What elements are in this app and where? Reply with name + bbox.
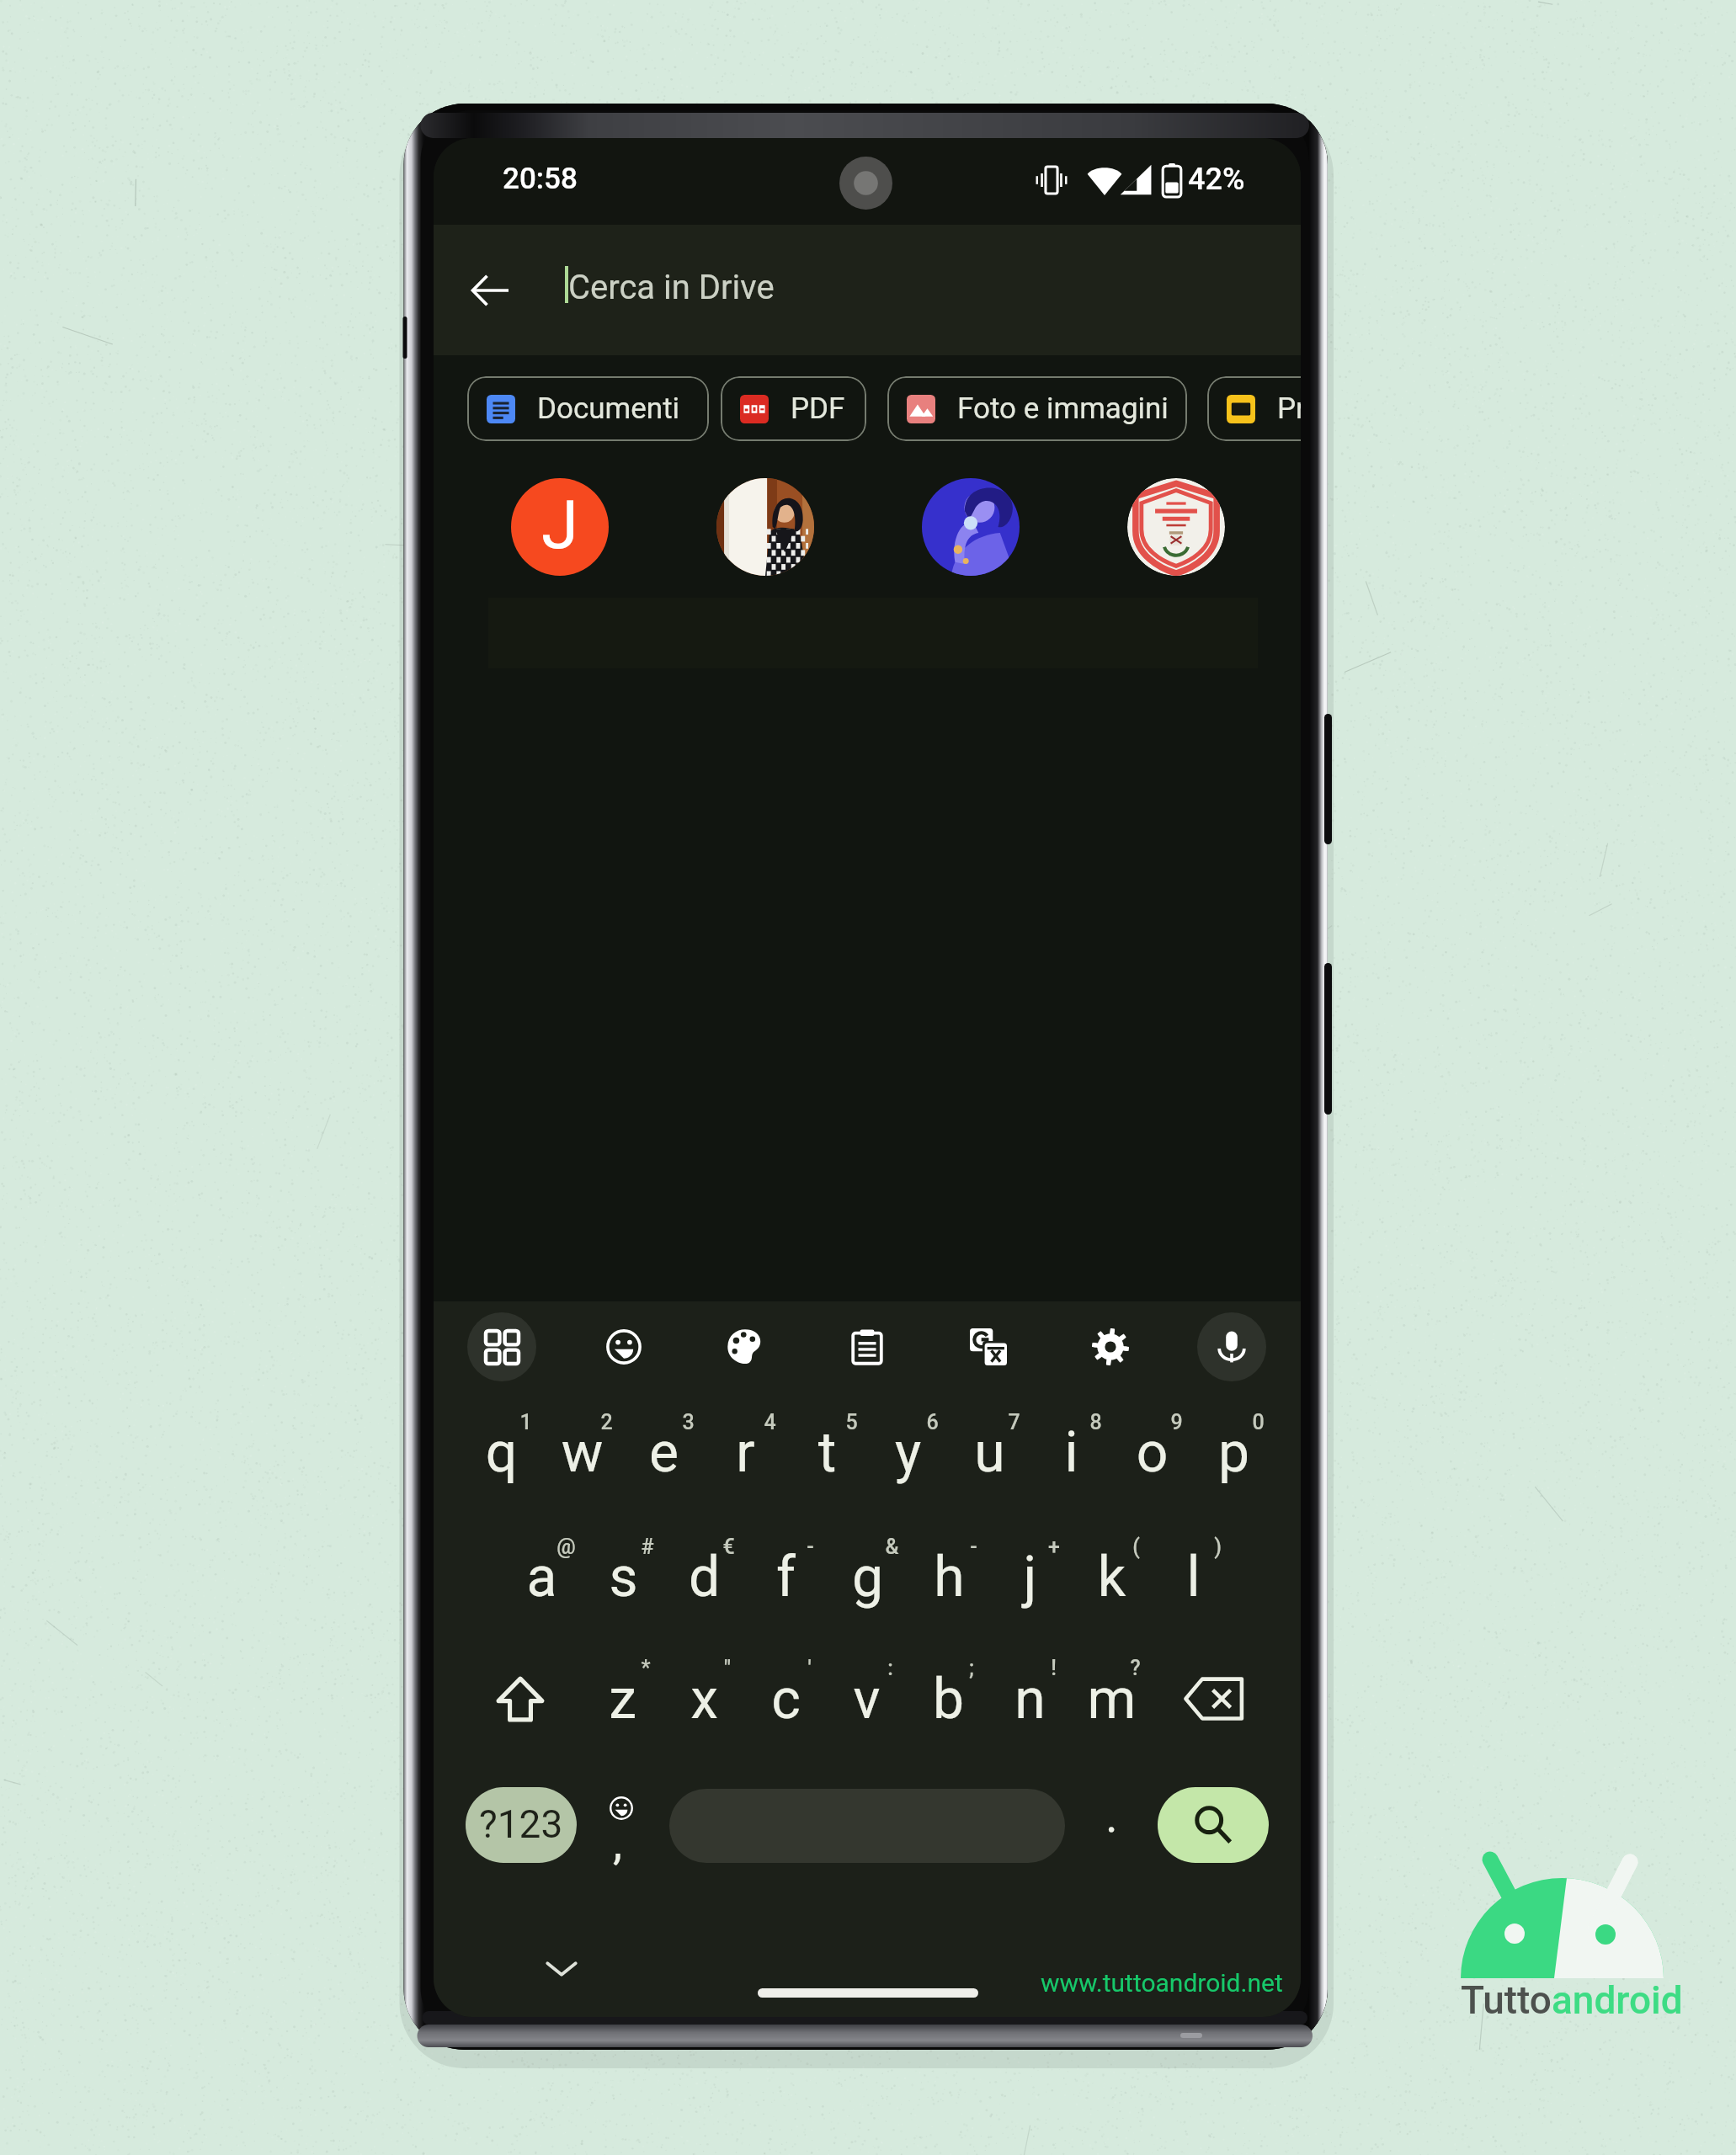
staticText: -	[970, 1535, 977, 1559]
button[interactable]: Space	[669, 1789, 1065, 1863]
staticText: 4	[764, 1410, 776, 1434]
button[interactable]: Backspace	[1154, 1632, 1274, 1757]
staticText: (	[1132, 1535, 1140, 1559]
button[interactable]: p	[1193, 1386, 1275, 1510]
staticText: 42%	[1188, 162, 1245, 197]
staticText: -	[807, 1535, 814, 1559]
staticText: t	[786, 1420, 868, 1485]
staticText: y	[867, 1420, 949, 1485]
staticText: ?	[1130, 1656, 1141, 1680]
button[interactable]: Profile photo	[716, 478, 814, 576]
button[interactable]: Comma	[589, 1783, 653, 1867]
staticText: '	[807, 1656, 812, 1680]
button[interactable]: Back	[453, 253, 527, 327]
button[interactable]: Profile J	[511, 478, 609, 576]
button[interactable]: v	[826, 1632, 908, 1757]
staticText: ,	[613, 1815, 623, 1870]
button[interactable]: l	[1153, 1510, 1234, 1635]
staticText: k	[1071, 1545, 1153, 1610]
button[interactable]: Settings	[1076, 1312, 1145, 1381]
button[interactable]: Period	[1086, 1789, 1137, 1863]
button[interactable]: t	[786, 1386, 868, 1510]
staticText: v	[826, 1667, 908, 1732]
button[interactable]: s	[583, 1510, 664, 1635]
button[interactable]: Themes	[711, 1312, 780, 1381]
button[interactable]: a	[501, 1510, 583, 1635]
button[interactable]: h	[908, 1510, 990, 1635]
staticText: 8	[1089, 1410, 1102, 1434]
button[interactable]: PDF	[721, 376, 866, 441]
staticText: 7	[1008, 1410, 1020, 1434]
button[interactable]: Emoji	[589, 1312, 658, 1381]
staticText: j	[989, 1545, 1071, 1610]
button[interactable]: Documenti	[467, 376, 709, 441]
staticText: d	[663, 1545, 745, 1610]
button[interactable]: Clipboard	[833, 1312, 902, 1381]
staticText: android	[1552, 1977, 1683, 2023]
staticText: Tutto	[1461, 1977, 1552, 2023]
staticText: o	[1111, 1420, 1193, 1485]
staticText: 2	[600, 1410, 613, 1434]
staticText: #	[641, 1535, 654, 1559]
staticText: @	[556, 1535, 576, 1559]
staticText: h	[908, 1545, 990, 1610]
button[interactable]: Shift	[461, 1632, 580, 1757]
button[interactable]: q	[461, 1386, 542, 1510]
button[interactable]: j	[989, 1510, 1071, 1635]
button[interactable]: Presentazioni	[1207, 376, 1301, 441]
button[interactable]: f	[745, 1510, 827, 1635]
button[interactable]: c	[745, 1632, 827, 1757]
button[interactable]: z	[582, 1632, 663, 1757]
staticText: 20:58	[503, 162, 578, 196]
staticText: .	[1105, 1788, 1118, 1844]
button[interactable]: d	[663, 1510, 745, 1635]
staticText: PDF	[791, 391, 845, 426]
staticText: x	[663, 1667, 745, 1732]
staticText: w	[541, 1420, 623, 1485]
button[interactable]: y	[867, 1386, 949, 1510]
staticText: z	[582, 1667, 663, 1732]
button[interactable]: Keyboard modes	[467, 1312, 536, 1381]
staticText: www.tuttoandroid.net	[1041, 1968, 1283, 1998]
staticText: ?123	[479, 1801, 563, 1847]
button[interactable]: Translate	[954, 1312, 1023, 1381]
button[interactable]: Hide keyboard	[546, 1959, 578, 1979]
button[interactable]: Back	[434, 225, 1301, 355]
button[interactable]: e	[623, 1386, 705, 1510]
staticText: :	[887, 1656, 893, 1680]
staticText: )	[1214, 1535, 1222, 1559]
button[interactable]: Team crest	[1127, 478, 1225, 576]
staticText: +	[1048, 1535, 1060, 1559]
staticText: 0	[1252, 1410, 1265, 1434]
staticText: l	[1153, 1545, 1234, 1610]
staticText: 5	[845, 1410, 858, 1434]
button[interactable]: u	[949, 1386, 1030, 1510]
button[interactable]: ?123	[466, 1787, 577, 1863]
button[interactable]: x	[663, 1632, 745, 1757]
staticText: "	[724, 1656, 731, 1680]
button[interactable]: w	[541, 1386, 623, 1510]
staticText: a	[501, 1545, 583, 1610]
button[interactable]: g	[827, 1510, 908, 1635]
staticText: Cerca in Drive	[568, 268, 775, 307]
staticText: Foto e immagini	[957, 391, 1169, 426]
button[interactable]: i	[1030, 1386, 1112, 1510]
button[interactable]: o	[1111, 1386, 1193, 1510]
staticText: ;	[969, 1656, 974, 1680]
staticText: e	[623, 1420, 705, 1485]
button[interactable]: r	[705, 1386, 786, 1510]
staticText: &	[885, 1535, 899, 1559]
staticText: J	[541, 486, 579, 565]
button[interactable]: b	[908, 1632, 989, 1757]
button[interactable]: Profile illustration	[922, 478, 1020, 576]
button[interactable]: Foto e immagini	[887, 376, 1187, 441]
staticText: i	[1030, 1420, 1112, 1485]
staticText: !	[1051, 1656, 1057, 1680]
staticText: 1	[519, 1410, 532, 1434]
button[interactable]: n	[989, 1632, 1071, 1757]
button[interactable]: m	[1071, 1632, 1153, 1757]
button[interactable]: k	[1071, 1510, 1153, 1635]
button[interactable]: Search	[1158, 1787, 1269, 1863]
button[interactable]: Voice input	[1197, 1312, 1266, 1381]
staticText: q	[461, 1420, 542, 1485]
